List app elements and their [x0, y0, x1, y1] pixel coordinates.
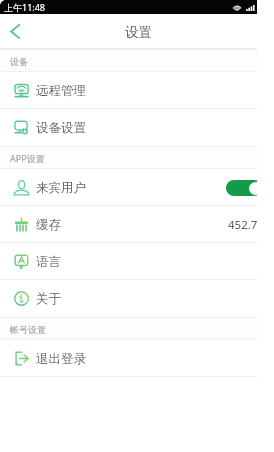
staticText: 关于 [36, 291, 61, 307]
button[interactable]: 关于 [0, 280, 274, 317]
button[interactable]: 语言 [0, 243, 274, 280]
staticText: 设备 [10, 56, 28, 67]
button[interactable]: 缓存 [0, 206, 274, 243]
button[interactable]: 设备设置 [0, 109, 274, 146]
staticText: 语言 [36, 254, 61, 270]
button[interactable]: 远程管理 [0, 72, 274, 109]
staticText: 上午11:48 [4, 1, 46, 13]
staticText: APP设置 [10, 152, 45, 164]
staticText: 缓存 [36, 217, 61, 233]
staticText: 设置 [125, 24, 152, 41]
staticText: 452.7K [228, 217, 265, 233]
button[interactable]: Guest user toggle [226, 180, 262, 196]
staticText: 远程管理 [36, 83, 86, 99]
button[interactable]: 退出登录 [0, 340, 274, 377]
staticText: 设备设置 [36, 120, 86, 136]
staticText: 来宾用户 [36, 180, 86, 196]
staticText: 帐号设置 [10, 324, 46, 335]
button[interactable]: Back [0, 14, 30, 49]
staticText: 退出登录 [36, 351, 86, 367]
button[interactable]: 来宾用户 [0, 169, 274, 206]
